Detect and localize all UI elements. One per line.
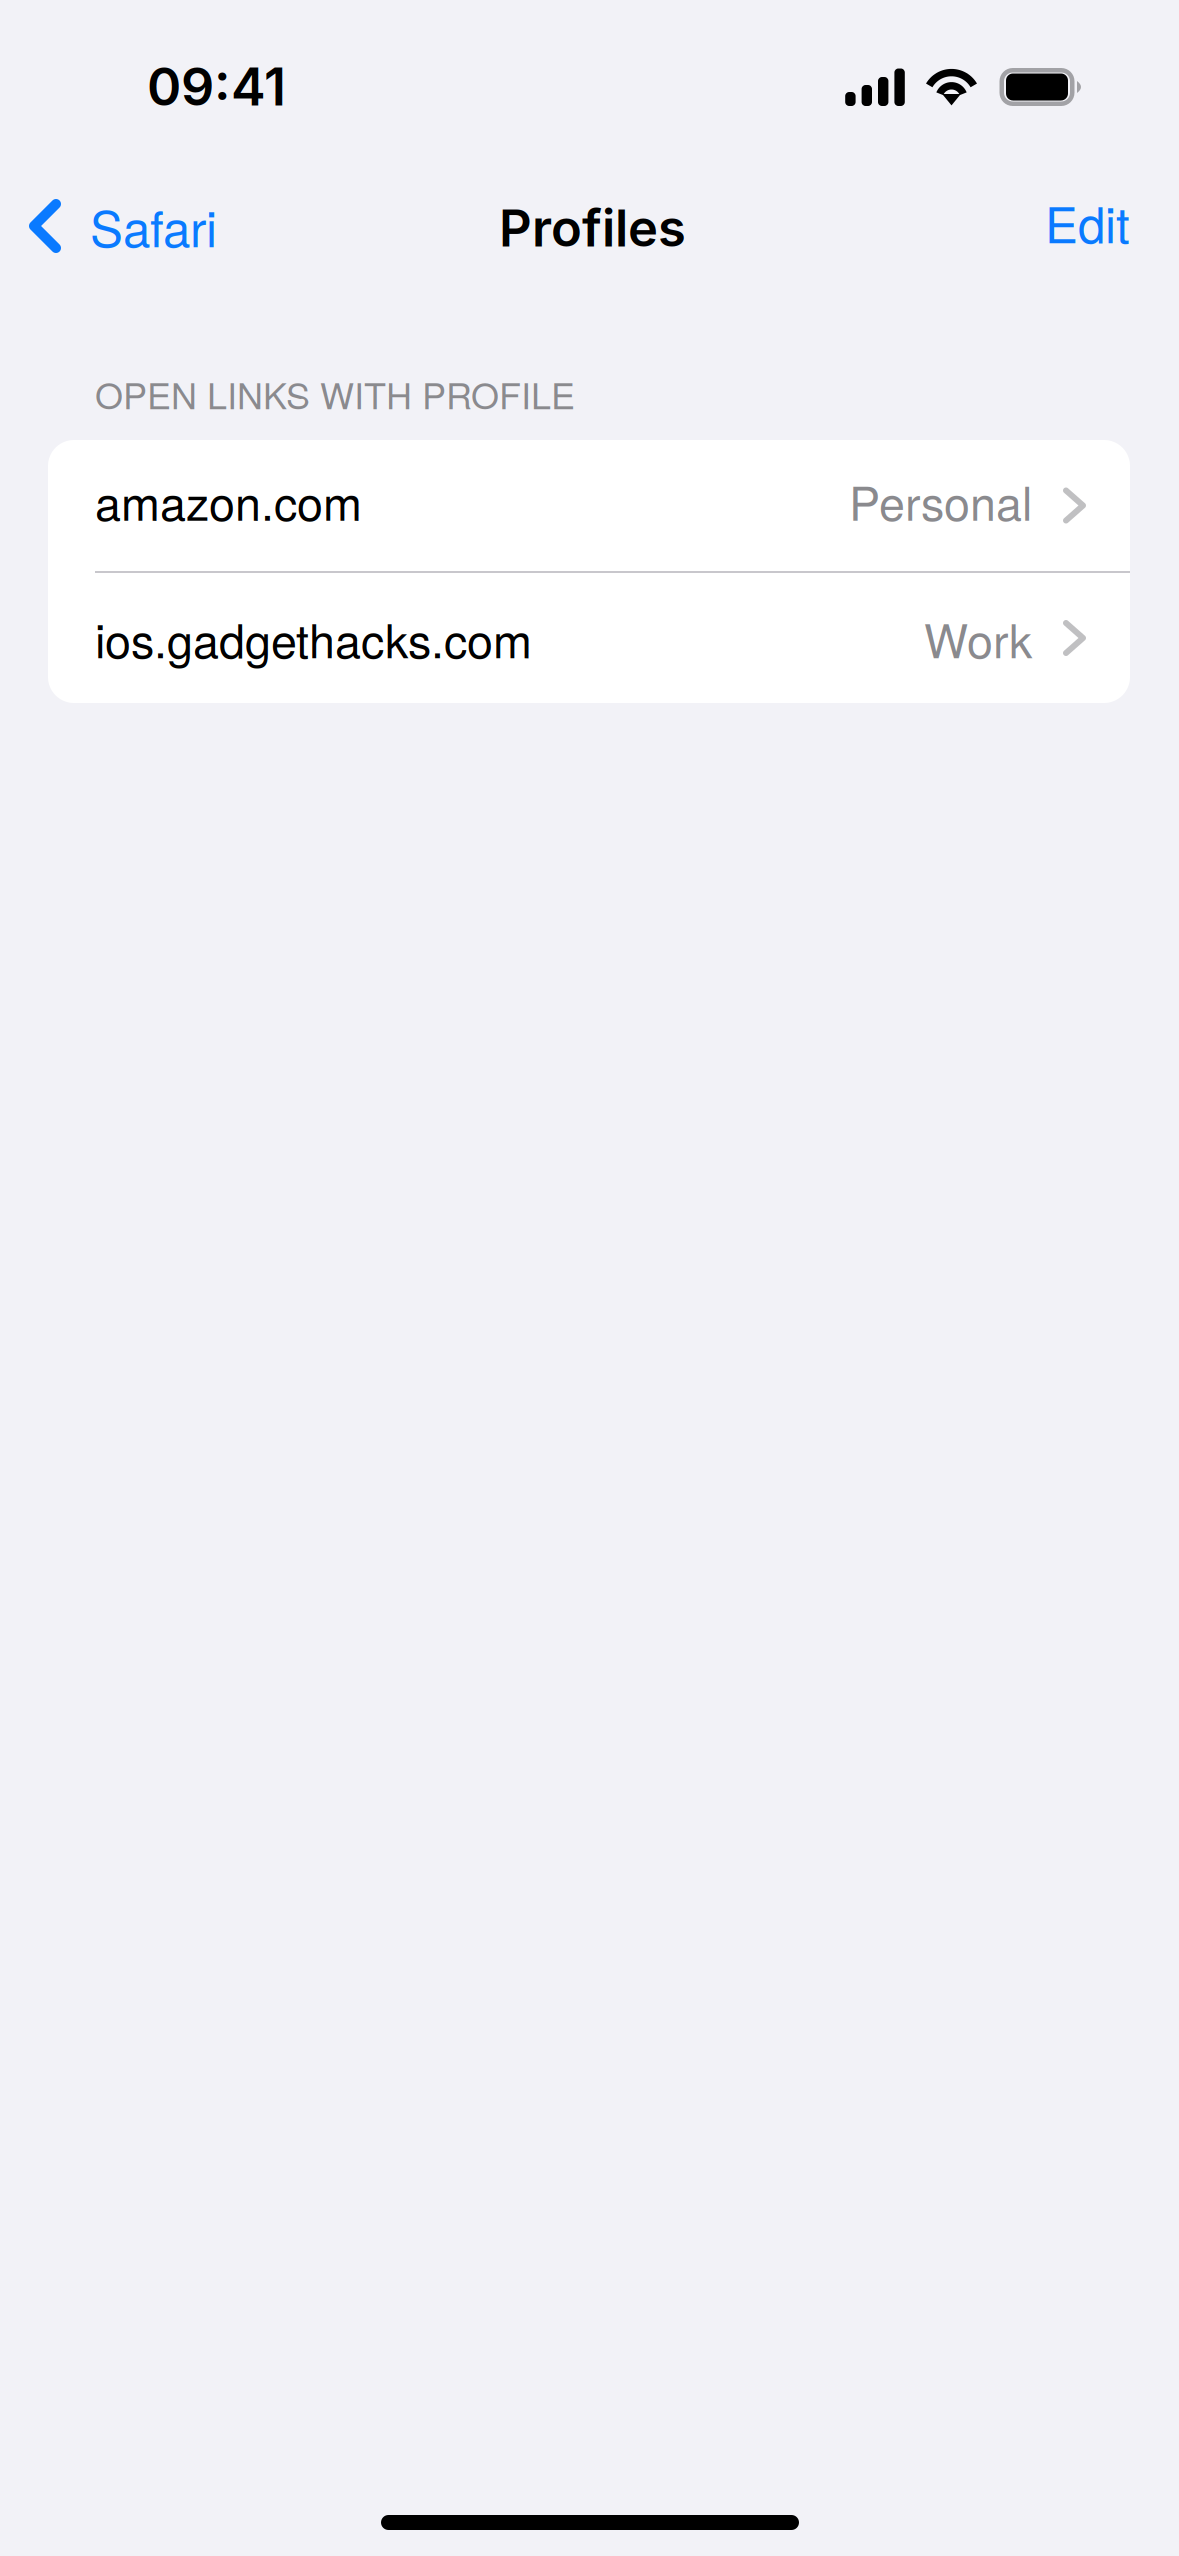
staticText: amazon.com	[95, 467, 362, 534]
button[interactable]: amazon.com	[48, 440, 1130, 571]
staticText: Edit	[1045, 187, 1130, 257]
staticText: Profiles	[499, 197, 686, 259]
staticText: Safari	[90, 191, 217, 261]
button[interactable]: Edit	[950, 156, 1130, 288]
staticText: ios.gadgethacks.com	[95, 605, 532, 671]
staticText: OPEN LINKS WITH PROFILE	[95, 368, 575, 420]
button[interactable]: Safari	[0, 160, 330, 292]
staticText: Work	[924, 605, 1032, 671]
staticText: Personal	[849, 467, 1032, 534]
staticText: 09:41	[147, 55, 286, 118]
button[interactable]: ios.gadgethacks.com	[48, 573, 1130, 703]
